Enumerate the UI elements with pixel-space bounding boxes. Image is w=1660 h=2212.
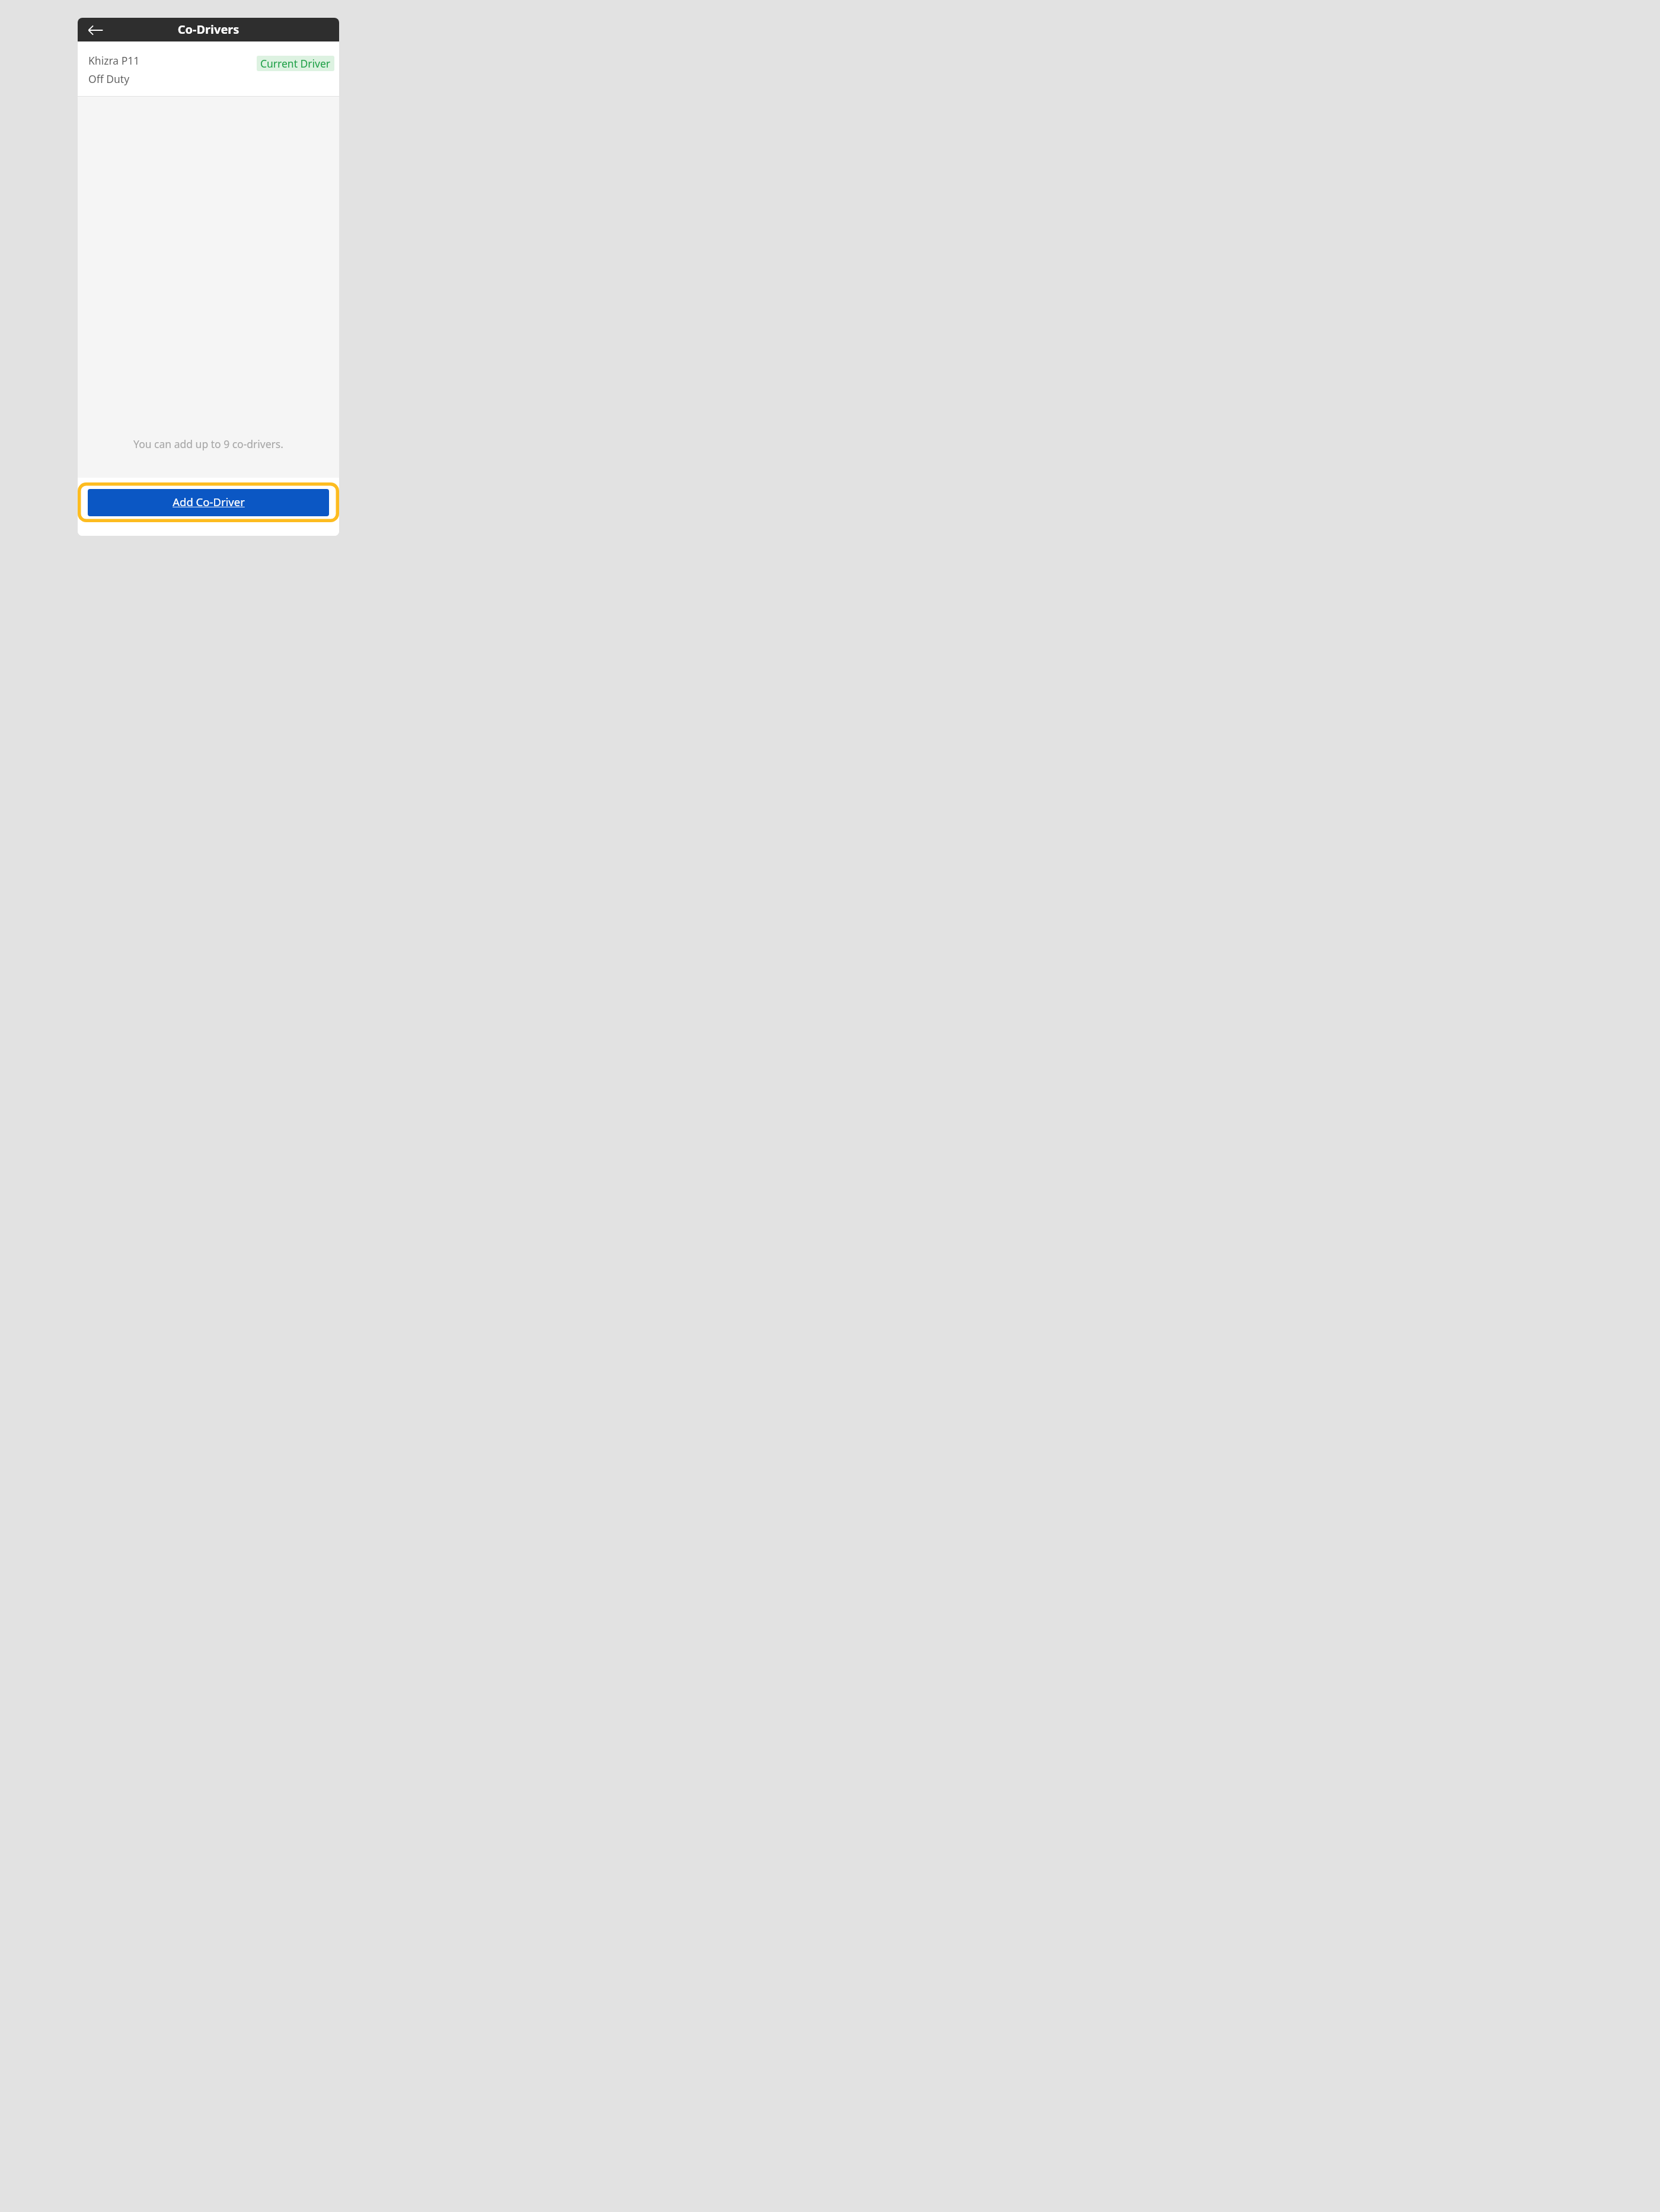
- button[interactable]: Khizra P11: [78, 41, 339, 96]
- staticText: Khizra P11: [88, 53, 140, 68]
- staticText: Co-Drivers: [78, 21, 339, 37]
- staticText: Off Duty: [88, 72, 130, 86]
- button[interactable]: Back: [85, 20, 106, 40]
- staticText: You can add up to 9 co-drivers.: [78, 437, 339, 451]
- staticText: Add Co-Driver: [173, 494, 245, 509]
- button[interactable]: Add Co-Driver: [88, 489, 329, 516]
- staticText: Current Driver: [260, 56, 331, 71]
